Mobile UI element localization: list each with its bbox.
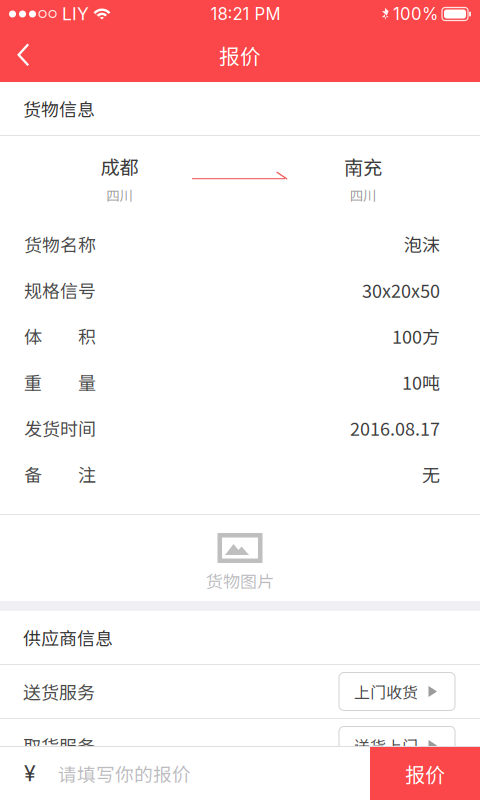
button[interactable]: 送货服务 (0, 665, 480, 718)
staticText: 100方 (392, 323, 440, 349)
staticText: 货物名称 (24, 231, 96, 257)
staticText: LIY (62, 3, 89, 24)
staticText: 四川 (350, 185, 376, 205)
staticText: ¥ (24, 761, 36, 786)
staticText: 发货时间 (24, 415, 96, 441)
staticText: 无 (422, 461, 440, 487)
staticText: 报价 (405, 759, 445, 788)
staticText: 南充 (344, 152, 382, 180)
staticText: 报价 (219, 40, 261, 70)
staticText: 送货服务 (23, 678, 95, 705)
staticText: 18:21 PM (210, 4, 280, 24)
staticText: 四川 (106, 185, 132, 205)
staticText: 取货服务 (23, 732, 95, 759)
staticText: 上门收货 (354, 680, 418, 703)
staticText: 100% (393, 4, 438, 24)
button[interactable]: 报价 (370, 747, 480, 800)
staticText: 规格信号 (24, 277, 96, 303)
staticText: 重 量 (24, 369, 96, 395)
staticText: 成都 (100, 152, 138, 180)
staticText: 2016.08.17 (350, 415, 440, 441)
button[interactable]: 取货服务 (0, 719, 480, 772)
staticText: 备 注 (24, 461, 96, 487)
staticText: 请填写你的报价 (58, 760, 191, 787)
staticText: 10吨 (402, 369, 440, 395)
staticText: 30x20x50 (362, 277, 440, 303)
staticText: 供应商信息 (23, 624, 113, 651)
staticText: 体 积 (24, 323, 96, 349)
staticText: 送货上门 (354, 734, 418, 757)
staticText: 泡沫 (404, 231, 440, 257)
staticText: 货物信息 (23, 95, 95, 122)
button[interactable]: Back (0, 28, 49, 81)
staticText: 货物图片 (206, 568, 274, 592)
